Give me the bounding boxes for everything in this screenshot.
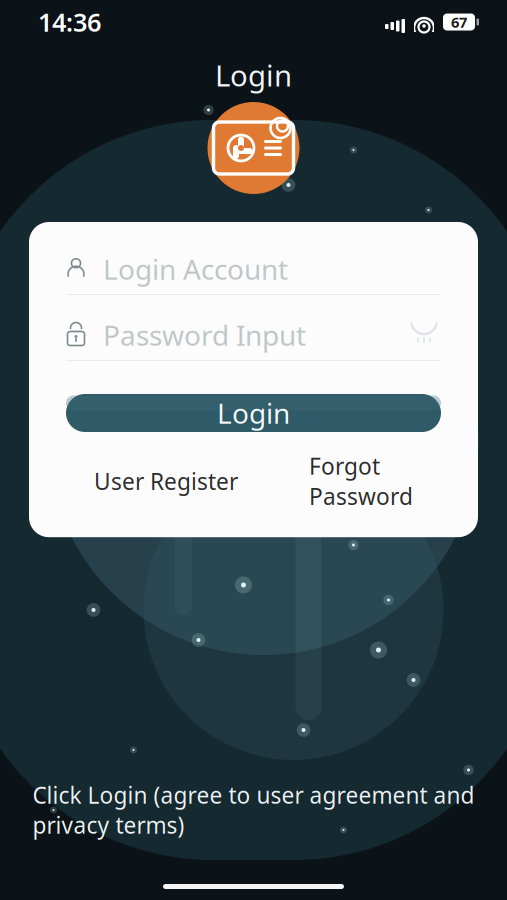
staticText: 14:36 [38,5,101,39]
staticText: Login Account [103,250,288,288]
staticText: Login [215,55,292,94]
button[interactable]: User Register [94,460,238,502]
button[interactable]: Forgot Password [309,445,413,517]
button[interactable]: Login [66,394,441,432]
staticText: Password Input [103,316,306,354]
staticText: User Register [94,466,238,496]
button[interactable]: Show password [407,320,441,350]
staticText: Click Login (agree to user agreement and… [32,780,474,840]
staticText: Login [217,394,290,432]
staticText: Forgot Password [309,451,413,511]
staticText: 67 [451,12,467,32]
